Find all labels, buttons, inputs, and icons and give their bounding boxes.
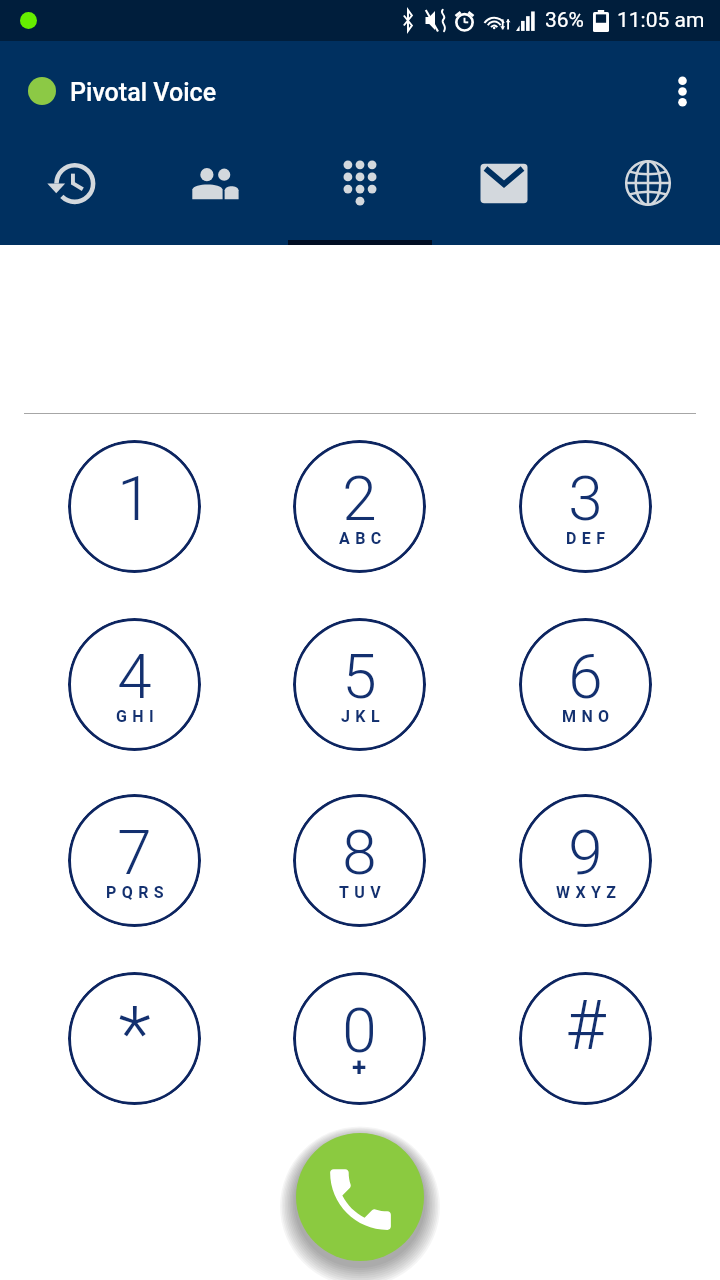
staticText: 3	[568, 462, 603, 535]
staticText: ABC	[339, 529, 387, 548]
button[interactable]: 1	[68, 440, 201, 573]
button[interactable]: 0	[293, 972, 426, 1105]
staticText: *	[118, 989, 151, 1078]
button[interactable]: 3	[519, 440, 652, 573]
staticText: 36%	[545, 8, 584, 33]
button[interactable]: 4	[68, 618, 201, 751]
staticText: 4	[117, 640, 152, 713]
button[interactable]: Web	[576, 137, 720, 245]
staticText: +	[352, 1052, 367, 1082]
staticText: 2	[342, 462, 377, 535]
staticText: 7	[117, 816, 152, 889]
button[interactable]: #	[519, 972, 652, 1105]
staticText: 1	[117, 462, 152, 535]
staticText: 11:05 am	[617, 8, 705, 33]
staticText: 8	[342, 816, 377, 889]
button[interactable]: Contacts	[144, 137, 288, 245]
button[interactable]: 7	[68, 794, 201, 927]
staticText: WXYZ	[556, 883, 622, 902]
button[interactable]: More options	[658, 65, 706, 113]
staticText: 0	[342, 994, 377, 1067]
staticText: DEF	[566, 529, 611, 548]
staticText: MNO	[562, 707, 615, 726]
button[interactable]: *	[68, 972, 201, 1105]
staticText: JKL	[341, 707, 385, 726]
button[interactable]: 2	[293, 440, 426, 573]
staticText: 9	[568, 816, 603, 889]
staticText: GHI	[116, 707, 160, 726]
button[interactable]: Recents	[0, 137, 144, 245]
staticText: 6	[568, 640, 603, 713]
button[interactable]: 6	[519, 618, 652, 751]
staticText: 5	[342, 640, 377, 713]
button[interactable]: Dialpad	[288, 137, 432, 245]
button[interactable]: 5	[293, 618, 426, 751]
button[interactable]: 8	[293, 794, 426, 927]
button[interactable]: 9	[519, 794, 652, 927]
staticText: Pivotal Voice	[70, 78, 217, 107]
staticText: TUV	[339, 883, 387, 902]
button[interactable]: Call	[296, 1133, 424, 1261]
button[interactable]: Messages	[432, 137, 576, 245]
staticText: #	[565, 985, 606, 1066]
staticText: PQRS	[106, 883, 170, 902]
